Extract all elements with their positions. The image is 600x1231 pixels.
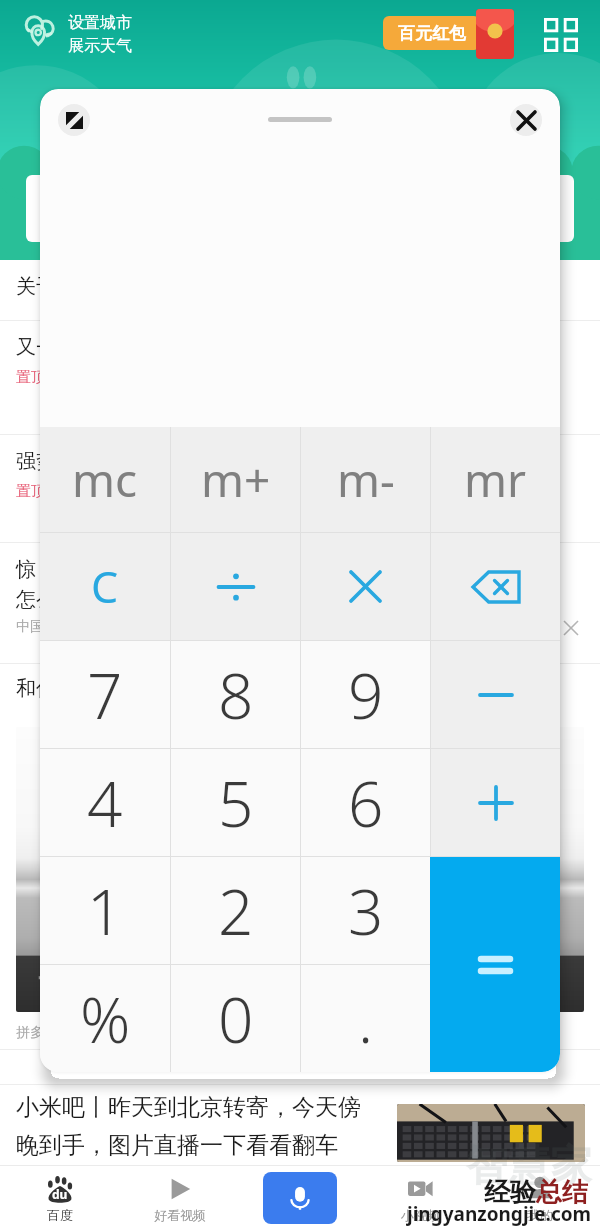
staticText: 和你聊聊这件事背后的真相到底 <box>16 676 296 701</box>
staticText: mr <box>464 448 527 511</box>
staticText: 好看视频 <box>154 1207 206 1223</box>
staticText: 我的 <box>527 1207 553 1223</box>
staticText: m+ <box>201 448 271 511</box>
button[interactable]: 5 <box>171 749 300 856</box>
staticText: 9 <box>348 653 384 737</box>
staticText: 经验 <box>484 1176 536 1209</box>
staticText: m- <box>337 448 395 511</box>
button[interactable]: m- <box>301 427 430 532</box>
button[interactable]: m+ <box>171 427 300 532</box>
staticText: 0 <box>218 977 254 1061</box>
staticText: 中国新闻网 <box>16 618 86 636</box>
staticText: 1 <box>87 869 123 953</box>
button[interactable]: Apps <box>544 18 578 52</box>
button[interactable]: du <box>0 1165 120 1231</box>
staticText: 5 <box>218 761 254 845</box>
staticText: 关于这件事儿的来龙去脉很复杂 <box>16 274 296 299</box>
staticText: jingyanzongjie.com <box>407 1201 592 1227</box>
button[interactable]: Search <box>26 175 574 242</box>
staticText: 7 <box>87 653 123 737</box>
button[interactable]: Screenshot <box>58 104 90 136</box>
button[interactable]: 强势回归！新品发布会定档今晚 <box>0 435 600 542</box>
staticText: 展示天气 <box>68 36 132 56</box>
button[interactable]: Weather <box>25 15 55 45</box>
staticText: % <box>80 977 131 1061</box>
staticText: 智慧家 <box>466 1140 592 1193</box>
button[interactable]: 6 <box>301 749 430 856</box>
staticText: mc <box>72 448 138 511</box>
button[interactable]: Backspace <box>431 533 560 640</box>
staticText: 拼多多 2万评论 <box>16 1022 116 1041</box>
button[interactable]: 4 <box>40 749 170 856</box>
button[interactable]: 我的 <box>480 1165 600 1231</box>
staticText: 设置城市 <box>68 13 132 33</box>
staticText: 8 <box>218 653 254 737</box>
button[interactable]: 百元红包 <box>383 16 480 50</box>
button[interactable]: mc <box>40 427 170 532</box>
staticText: 置顶 <box>16 482 46 501</box>
button[interactable]: Multiply <box>301 533 430 640</box>
button[interactable]: 小米吧丨昨天到北京转寄，今天傍 晚到手，图片直播一下看看翻车 <box>0 1085 600 1165</box>
staticText: du <box>52 1186 68 1202</box>
button[interactable]: Divide <box>171 533 300 640</box>
staticText: 小视频 <box>401 1207 440 1223</box>
button[interactable]: 3 <box>301 857 430 964</box>
staticText: . <box>358 977 374 1061</box>
button[interactable]: Voice search <box>263 1172 337 1224</box>
button[interactable]: 小视频 <box>360 1165 480 1231</box>
button[interactable]: 关于这件事儿的来龙去脉很复杂 <box>0 260 600 320</box>
staticText: 6 <box>348 761 384 845</box>
staticText: 又一家巨头倒下了，许多人唏嘘 <box>16 335 296 360</box>
staticText: 百元红包 <box>398 23 466 44</box>
button[interactable]: 7 <box>40 641 170 748</box>
button[interactable]: 惊！这种做法到底行不行，我们 怎么看待这个问题的答案 <box>0 543 600 663</box>
button[interactable]: 又一家巨头倒下了，许多人唏嘘 <box>0 321 600 434</box>
button[interactable]: Clear <box>40 533 170 640</box>
staticText: 百度 <box>47 1207 73 1223</box>
staticText: 惊！这种做法到底行不行，我们 怎么看待这个问题的答案 <box>16 557 296 612</box>
button[interactable]: 9 <box>301 641 430 748</box>
button[interactable]: mr <box>431 427 560 532</box>
staticText: 2 <box>218 869 254 953</box>
staticText: 置顶 <box>16 368 46 387</box>
button[interactable]: . <box>301 965 430 1072</box>
button[interactable]: Close <box>510 104 542 136</box>
button[interactable]: Minus <box>431 641 560 748</box>
button[interactable]: Dismiss ad <box>564 621 578 635</box>
button[interactable]: Red packet <box>476 9 514 59</box>
button[interactable]: 和你聊聊这件事背后的真相到底 <box>0 664 600 1049</box>
button[interactable]: 0 <box>171 965 300 1072</box>
staticText: 3 <box>348 869 384 953</box>
button[interactable]: Equals <box>430 857 560 1072</box>
staticText: 小米吧丨昨天到北京转寄，今天傍 晚到手，图片直播一下看看翻车 <box>16 1093 361 1159</box>
staticText: 强势回归！新品发布会定档今晚 <box>16 449 296 474</box>
button[interactable]: Plus <box>431 749 560 856</box>
staticText: 4 <box>87 761 123 845</box>
staticText: 总结 <box>536 1176 588 1209</box>
button[interactable]: 好看视频 <box>120 1165 240 1231</box>
button[interactable]: 1 <box>40 857 170 964</box>
button[interactable]: % <box>40 965 170 1072</box>
button[interactable]: 2 <box>171 857 300 964</box>
staticText: C <box>91 557 119 616</box>
button[interactable]: 8 <box>171 641 300 748</box>
